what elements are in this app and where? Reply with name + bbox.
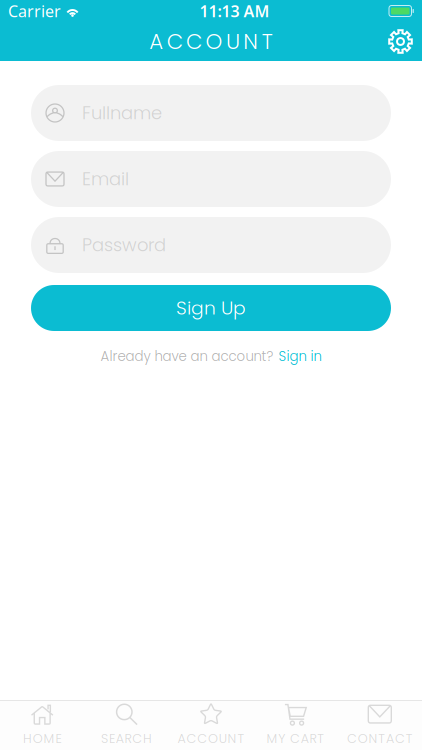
staticText: N xyxy=(243,27,258,56)
staticText: O xyxy=(358,730,368,747)
button[interactable]: Settings xyxy=(379,20,422,63)
button[interactable]: M xyxy=(253,700,338,750)
staticText: A xyxy=(178,730,186,747)
staticText: U xyxy=(226,27,240,56)
button[interactable]: Sign Up xyxy=(31,285,391,331)
staticText: C xyxy=(132,730,142,747)
staticText: H xyxy=(23,730,32,747)
staticText: Sign in xyxy=(278,347,321,366)
staticText: E xyxy=(55,730,61,747)
staticText: M xyxy=(266,730,277,747)
staticText: T xyxy=(378,730,385,747)
staticText: Y xyxy=(278,730,285,747)
staticText: C xyxy=(347,730,357,747)
staticText: E xyxy=(109,730,115,747)
button[interactable]: Already have an account? xyxy=(92,341,329,372)
button[interactable]: Email xyxy=(31,151,391,207)
staticText: S xyxy=(101,730,108,747)
staticText: R xyxy=(309,730,316,747)
staticText: T xyxy=(317,730,324,747)
button[interactable]: H xyxy=(0,700,84,750)
staticText: Already have an account? xyxy=(100,347,273,366)
staticText: Fullname xyxy=(82,100,162,125)
staticText: Password xyxy=(82,232,166,257)
staticText: O xyxy=(208,730,218,747)
button[interactable]: S xyxy=(84,700,169,750)
staticText: C xyxy=(186,27,202,56)
staticText: N xyxy=(368,730,377,747)
staticText: A xyxy=(116,730,124,747)
staticText: O xyxy=(205,27,222,56)
staticText: C xyxy=(197,730,207,747)
staticText: Email xyxy=(82,166,129,191)
staticText: C xyxy=(167,27,183,56)
button[interactable]: Password xyxy=(31,217,391,273)
staticText: T xyxy=(237,730,244,747)
button[interactable]: C xyxy=(338,700,422,750)
staticText: R xyxy=(124,730,131,747)
staticText: A xyxy=(386,730,394,747)
staticText: 11:13 AM xyxy=(199,0,269,22)
staticText: C xyxy=(395,730,405,747)
staticText: Carrier xyxy=(8,0,61,22)
button[interactable]: Fullname xyxy=(31,85,391,141)
staticText: T xyxy=(262,27,273,56)
staticText: C xyxy=(186,730,196,747)
staticText: T xyxy=(406,730,413,747)
button[interactable]: A xyxy=(169,700,253,750)
staticText: A xyxy=(301,730,309,747)
staticText: A xyxy=(149,27,163,56)
staticText: C xyxy=(290,730,300,747)
staticText: H xyxy=(143,730,152,747)
staticText: N xyxy=(228,730,237,747)
staticText: Sign Up xyxy=(176,295,246,321)
staticText: U xyxy=(219,730,227,747)
staticText: O xyxy=(33,730,43,747)
staticText: M xyxy=(44,730,55,747)
